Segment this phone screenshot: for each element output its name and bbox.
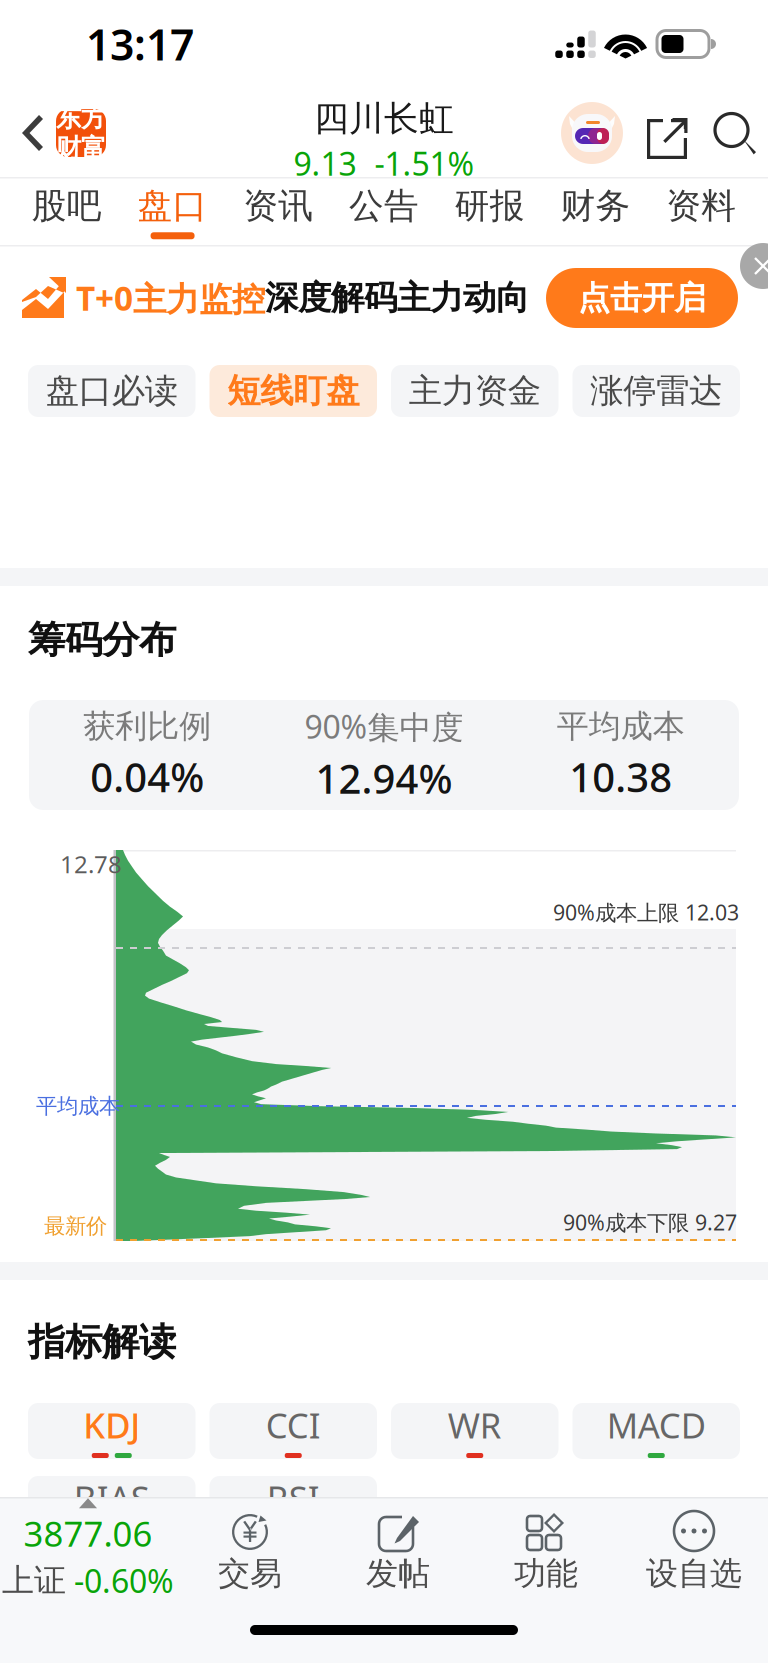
staticText: 13:17 xyxy=(86,16,194,72)
staticText: 交易 xyxy=(218,1554,282,1593)
staticText: 公告 xyxy=(349,185,419,227)
button[interactable]: 盘口必读 xyxy=(28,365,195,417)
staticText: 设自选 xyxy=(646,1554,742,1593)
staticText: WR xyxy=(448,1402,502,1448)
button[interactable]: 发帖 xyxy=(324,1497,472,1605)
button[interactable]: 功能 xyxy=(472,1497,620,1605)
button[interactable]: RSI xyxy=(209,1476,377,1532)
staticText: 0.04% xyxy=(90,750,204,803)
staticText: 筹码分布 xyxy=(28,617,176,663)
button[interactable]: 设自选 xyxy=(620,1497,768,1605)
button[interactable]: Shanghai Composite index xyxy=(0,1497,176,1605)
button[interactable]: Back xyxy=(0,112,56,154)
staticText: 90%集中度 xyxy=(304,705,463,748)
staticText: 3877.06 xyxy=(23,1510,152,1556)
staticText: 功能 xyxy=(514,1554,578,1593)
button[interactable]: 盘口 xyxy=(120,178,225,245)
staticText: 指标解读 xyxy=(28,1319,176,1365)
staticText: T+0主力监控 xyxy=(76,276,265,320)
staticText: 发帖 xyxy=(366,1554,430,1593)
staticText: 深度解码主力动向 xyxy=(265,277,529,318)
button[interactable]: 公告 xyxy=(331,178,437,245)
button[interactable]: 资讯 xyxy=(225,178,331,245)
staticText: BIAS xyxy=(74,1475,150,1521)
staticText: 12.78 xyxy=(60,848,122,880)
staticText: 平均成本 xyxy=(36,1093,120,1119)
staticText: 研报 xyxy=(455,185,525,227)
button[interactable]: East Money home xyxy=(56,109,106,157)
staticText: 财务 xyxy=(560,185,630,227)
button[interactable]: WR xyxy=(391,1403,558,1459)
button[interactable]: 研报 xyxy=(437,178,543,245)
button[interactable]: 财务 xyxy=(543,178,648,245)
button[interactable]: 交易 xyxy=(176,1497,324,1605)
button[interactable]: 股吧 xyxy=(14,178,120,245)
staticText: -1.51% xyxy=(374,142,474,184)
staticText: 90%成本下限 9.27 xyxy=(563,1208,737,1236)
button[interactable]: 主力资金 xyxy=(391,365,558,417)
button[interactable]: 涨停雷达 xyxy=(572,365,740,417)
staticText: 上证 xyxy=(2,1561,66,1600)
staticText: 获利比例 xyxy=(83,707,211,746)
button[interactable]: 点击开启 xyxy=(546,268,738,328)
staticText: 涨停雷达 xyxy=(590,370,722,411)
staticText: 最新价 xyxy=(44,1213,107,1239)
staticText: 盘口 xyxy=(138,185,208,227)
staticText: MACD xyxy=(607,1402,706,1448)
staticText: KDJ xyxy=(83,1402,140,1448)
staticText: 10.38 xyxy=(569,750,672,803)
staticText: 资讯 xyxy=(243,185,313,227)
staticText: 资料 xyxy=(666,185,736,227)
button[interactable]: 短线盯盘 xyxy=(209,365,377,417)
staticText: 9.13 xyxy=(293,142,356,184)
staticText: 财富 xyxy=(56,132,106,164)
button[interactable]: Close ad xyxy=(740,243,768,289)
staticText: 主力资金 xyxy=(409,370,541,411)
staticText: 12.94% xyxy=(315,752,452,805)
staticText: 四川长虹 xyxy=(314,97,454,140)
staticText: -0.60% xyxy=(74,1559,174,1602)
staticText: 平均成本 xyxy=(557,707,685,746)
button[interactable]: MACD xyxy=(572,1403,740,1459)
button[interactable]: Search xyxy=(715,109,757,156)
staticText: 股吧 xyxy=(32,185,102,227)
button[interactable]: AI assistant xyxy=(561,102,623,164)
button[interactable]: 资料 xyxy=(648,178,754,245)
staticText: 短线盯盘 xyxy=(227,370,359,411)
staticText: 东方 xyxy=(56,102,106,133)
button[interactable]: Share xyxy=(647,107,687,159)
staticText: 90%成本上限 12.03 xyxy=(553,898,739,926)
staticText: 盘口必读 xyxy=(46,370,178,411)
button[interactable]: BIAS xyxy=(28,1476,195,1532)
staticText: RSI xyxy=(267,1475,320,1521)
staticText: CCI xyxy=(266,1402,321,1448)
button[interactable]: CCI xyxy=(209,1403,377,1459)
button[interactable]: KDJ xyxy=(28,1403,195,1459)
staticText: 点击开启 xyxy=(578,278,706,318)
